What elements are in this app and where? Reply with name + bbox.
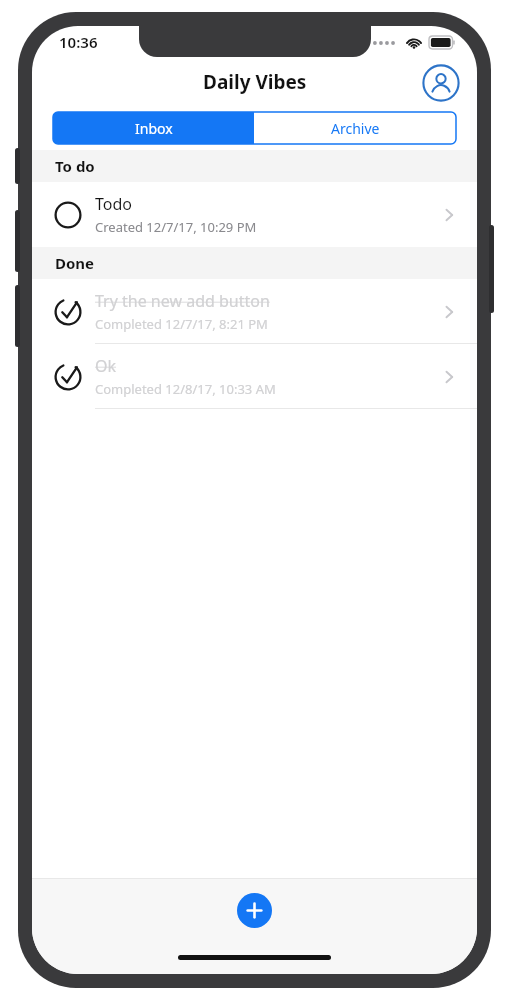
- staticText: Todo: [95, 193, 132, 215]
- staticText: Archive: [331, 119, 380, 138]
- button[interactable]: Archive: [254, 112, 456, 144]
- staticText: Created 12/7/17, 10:29 PM: [95, 218, 257, 236]
- staticText: Done: [55, 253, 95, 273]
- button[interactable]: Ok: [32, 344, 477, 409]
- staticText: Completed 12/7/17, 8:21 PM: [95, 315, 268, 333]
- button[interactable]: Inbox: [53, 112, 254, 144]
- staticText: Ok: [95, 355, 117, 377]
- staticText: Daily Vibes: [203, 69, 307, 95]
- button[interactable]: Add new item: [237, 893, 272, 928]
- button[interactable]: Try the new add button: [32, 279, 477, 344]
- staticText: To do: [55, 156, 95, 176]
- staticText: Completed 12/8/17, 10:33 AM: [95, 380, 276, 398]
- button[interactable]: Profile: [420, 62, 461, 103]
- staticText: 10:36: [59, 32, 98, 52]
- button[interactable]: Todo: [32, 182, 477, 247]
- staticText: Try the new add button: [95, 290, 270, 312]
- staticText: Inbox: [135, 119, 173, 138]
